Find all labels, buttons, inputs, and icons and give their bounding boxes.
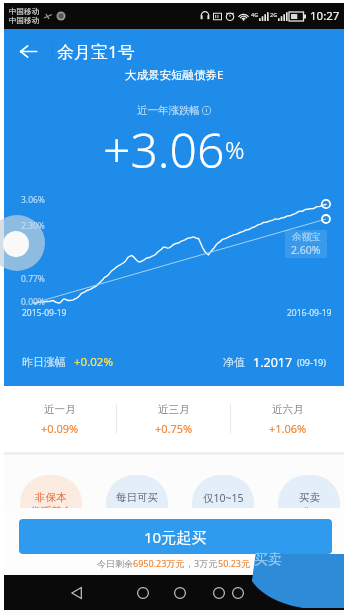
staticText: 大成景安短融债券E [125, 67, 224, 83]
button[interactable]: Home [130, 575, 156, 610]
staticText: 买卖 [299, 491, 320, 504]
staticText: 中国移动 [9, 7, 39, 16]
button[interactable]: 仅10~15 [192, 475, 254, 531]
staticText: 10:27 [310, 8, 340, 24]
staticText: 每日可买 [116, 491, 158, 504]
staticText: +0.02% [74, 354, 113, 370]
staticText: 仅10~15 [203, 491, 244, 505]
staticText: 10元起买 [144, 527, 207, 547]
staticText: 万可买 [208, 506, 240, 519]
button[interactable]: 非保本 [20, 475, 82, 531]
button[interactable]: Back [64, 575, 90, 610]
staticText: +0.75% [155, 421, 193, 436]
staticText: 50.23元 [218, 557, 251, 569]
staticText: 2.60% [291, 243, 321, 257]
staticText: +3.06 [103, 117, 225, 171]
staticText: 近一月 [44, 403, 76, 416]
staticText: +0.09% [41, 421, 79, 436]
button[interactable]: Back [4, 32, 52, 70]
button[interactable]: 每日可买 [106, 475, 168, 531]
staticText: 买卖 [254, 551, 282, 569]
button[interactable]: 近一月 [4, 386, 116, 452]
staticText: 近六月 [272, 403, 304, 416]
staticText: 1.2017 [253, 354, 293, 371]
staticText: ，3万元 [185, 557, 218, 569]
staticText: 货币基金 [30, 505, 72, 518]
staticText: 余额宝 [292, 231, 321, 243]
staticText: 0.77% [21, 273, 45, 285]
staticText: 4G [251, 11, 259, 18]
staticText: +1.06% [269, 421, 307, 436]
staticText: (09-19) [297, 356, 326, 368]
staticText: 2016-09-19 [287, 307, 332, 319]
button[interactable]: App switch [206, 575, 232, 610]
button[interactable]: 近六月 [231, 386, 344, 452]
staticText: 2015-09-19 [22, 307, 67, 319]
staticText: 余月宝1号 [57, 40, 135, 63]
staticText: 0费用 [295, 505, 323, 519]
button[interactable]: Recent apps [167, 575, 193, 610]
staticText: 2.30% [21, 220, 45, 232]
staticText: 2G [270, 11, 278, 18]
staticText: 3.06% [21, 194, 45, 206]
button[interactable]: 10元起买 [19, 519, 332, 554]
staticText: 中国移动 [9, 16, 39, 25]
staticText: 非保本 [35, 491, 67, 504]
staticText: 6950.23万元 [133, 557, 185, 569]
staticText: 0.00% [21, 296, 45, 308]
staticText: % [225, 133, 245, 166]
staticText: 昨日涨幅 [22, 355, 66, 369]
staticText: 今日剩余 [97, 558, 133, 569]
staticText: 近一年涨跌幅 [137, 104, 200, 117]
staticText: 近三月 [158, 403, 190, 416]
button[interactable]: More [225, 575, 251, 610]
button[interactable]: 近三月 [117, 386, 230, 452]
button[interactable]: 买卖 [278, 475, 340, 531]
staticText: 净值 [223, 355, 245, 369]
